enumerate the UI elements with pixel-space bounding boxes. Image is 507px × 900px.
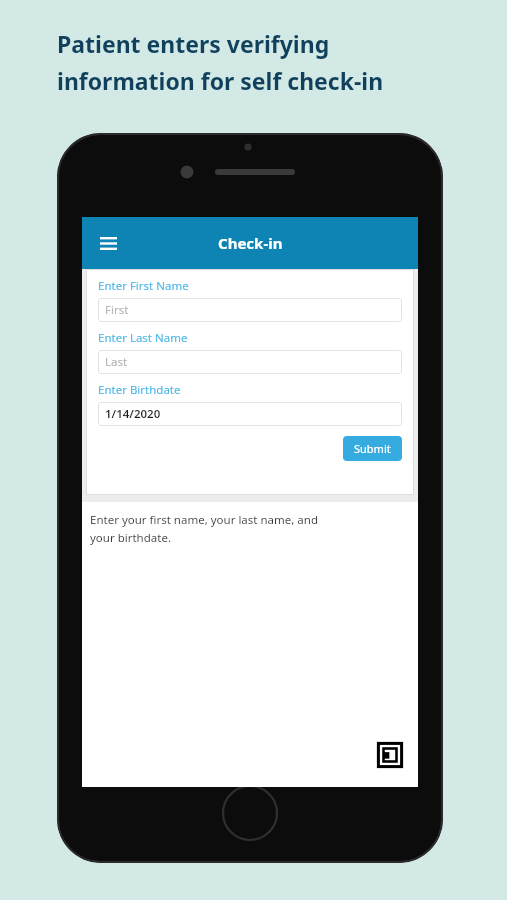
button[interactable]: Scan code <box>370 735 410 775</box>
staticText: information for self check-in <box>57 65 384 96</box>
staticText: Enter your first name, your last name, a… <box>90 512 318 528</box>
button[interactable]: Submit <box>343 436 402 461</box>
staticText: Enter First Name <box>98 278 189 294</box>
button[interactable]: Last <box>98 350 402 374</box>
staticText: First <box>105 302 129 318</box>
staticText: Last <box>105 354 128 370</box>
staticText: your birthdate. <box>90 530 171 546</box>
button[interactable]: First <box>98 298 402 322</box>
staticText: Enter Birthdate <box>98 382 181 398</box>
staticText: 1/14/2020 <box>105 406 161 422</box>
staticText: Submit <box>354 441 391 456</box>
staticText: Enter Last Name <box>98 330 188 346</box>
staticText: Patient enters verifying <box>57 28 330 59</box>
button[interactable]: 1/14/2020 <box>98 402 402 426</box>
button[interactable]: Menu <box>90 225 126 261</box>
staticText: Check-in <box>218 233 283 253</box>
